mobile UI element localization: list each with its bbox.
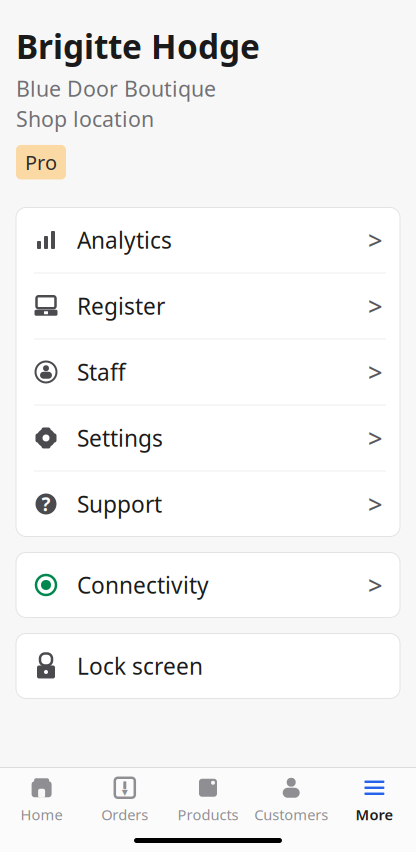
button[interactable]: Products <box>166 774 250 826</box>
staticText: > <box>368 487 382 521</box>
staticText: ▾ <box>122 785 128 799</box>
staticText: Register <box>77 291 165 321</box>
staticText: > <box>368 223 382 257</box>
staticText: Shop location <box>16 105 154 133</box>
staticText: Support <box>77 489 162 519</box>
staticText: Products <box>177 805 238 824</box>
button[interactable]: Lock screen <box>16 633 400 698</box>
button[interactable]: Register <box>16 273 400 338</box>
button[interactable]: Settings <box>16 405 400 470</box>
staticText: Orders <box>101 805 148 824</box>
button[interactable]: More <box>333 774 416 826</box>
staticText: > <box>368 421 382 455</box>
staticText: More <box>355 805 393 824</box>
staticText: Analytics <box>77 225 172 255</box>
staticText: Lock screen <box>77 651 203 681</box>
button[interactable]: ? <box>16 471 400 536</box>
button[interactable]: ▾ <box>83 774 166 826</box>
staticText: > <box>368 355 382 389</box>
staticText: Connectivity <box>77 570 209 600</box>
staticText: > <box>368 568 382 602</box>
staticText: Blue Door Boutique <box>16 74 216 103</box>
staticText: Settings <box>77 423 163 453</box>
button[interactable]: Staff <box>16 339 400 404</box>
staticText: Staff <box>77 357 126 387</box>
button[interactable]: Customers <box>250 774 333 826</box>
staticText: Customers <box>254 805 328 824</box>
button[interactable]: Analytics <box>16 207 400 272</box>
staticText: Home <box>21 805 63 824</box>
staticText: ? <box>41 492 50 516</box>
staticText: Pro <box>25 149 57 175</box>
staticText: Brigitte Hodge <box>16 24 260 68</box>
button[interactable]: Connectivity <box>16 552 400 617</box>
staticText: > <box>368 289 382 323</box>
button[interactable]: Home <box>0 774 83 826</box>
